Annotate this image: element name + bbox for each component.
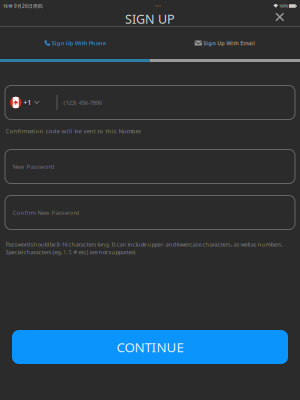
staticText: •••	[155, 3, 161, 9]
staticText: Sign Up With Phone	[52, 39, 106, 47]
staticText: Sign Up With Email	[203, 39, 255, 47]
button[interactable]: Sign Up With Email	[150, 27, 300, 59]
staticText: (123) 456-7890	[63, 98, 101, 107]
staticText: Confirmation code will be sent to this N…	[5, 127, 141, 135]
staticText: 100%	[278, 3, 289, 9]
staticText: Confirm New Password	[12, 208, 79, 216]
staticText: CONTINUE	[116, 338, 183, 356]
staticText: New Password	[12, 162, 54, 170]
button[interactable]: CONTINUE	[12, 330, 288, 364]
staticText: 9月26日周四	[12, 3, 43, 9]
staticText: SIGN UP	[125, 10, 175, 28]
button[interactable]: Country code plus one	[5, 85, 56, 119]
staticText: +1	[21, 98, 31, 107]
staticText: 13:18	[3, 3, 12, 9]
button[interactable]: Sign Up With Phone	[0, 27, 150, 59]
staticText: Password should be 8-16 characters long.…	[5, 240, 283, 256]
button[interactable]: Close	[269, 13, 300, 25]
